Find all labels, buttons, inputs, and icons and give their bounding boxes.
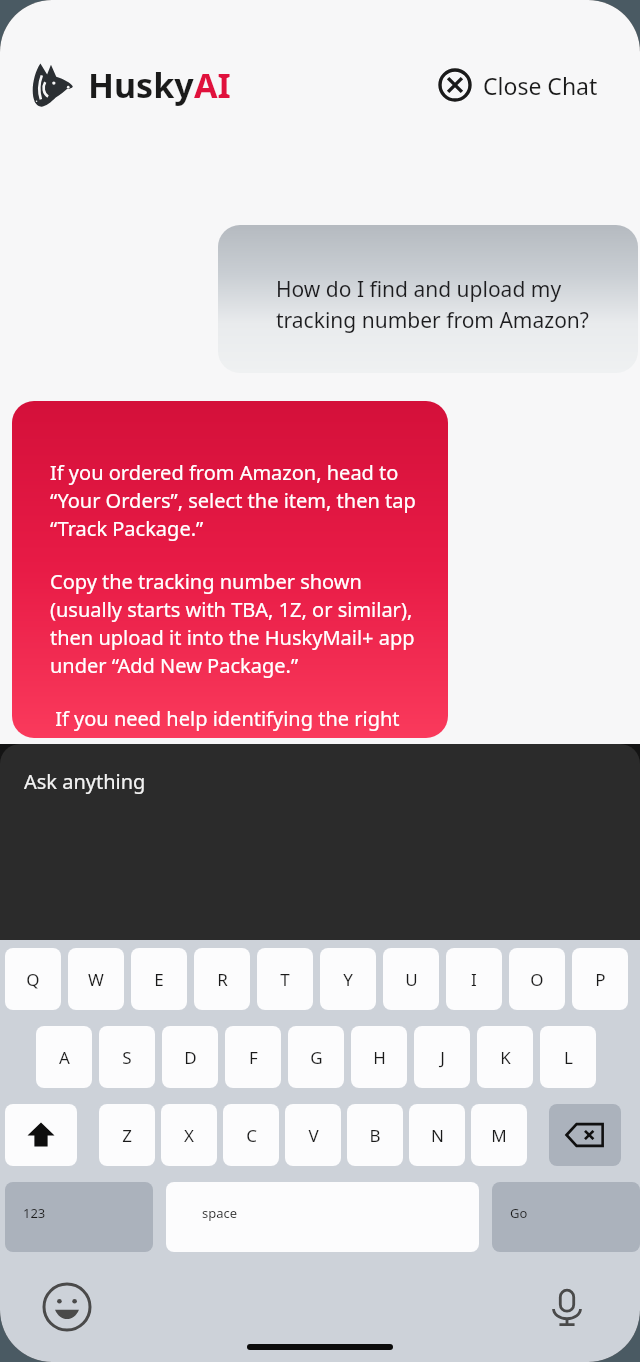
button[interactable]: V — [285, 1104, 341, 1166]
button[interactable]: If you ordered from Amazon, head to “You… — [12, 401, 448, 738]
staticText: Ask anything — [24, 768, 146, 795]
staticText: X — [184, 1124, 194, 1147]
button[interactable]: Close Chat — [438, 68, 598, 102]
button[interactable]: Husky — [26, 61, 231, 109]
button[interactable]: B — [347, 1104, 403, 1166]
staticText: Copy the tracking number shown (usually … — [50, 568, 434, 679]
button[interactable]: G — [288, 1026, 344, 1088]
staticText: D — [184, 1046, 197, 1069]
button[interactable]: Ask anything — [0, 744, 640, 940]
staticText: O — [530, 968, 544, 991]
button[interactable]: F — [225, 1026, 281, 1088]
button[interactable]: I — [446, 948, 502, 1010]
button[interactable]: D — [162, 1026, 218, 1088]
staticText: V — [308, 1124, 319, 1147]
staticText: Go — [510, 1204, 528, 1222]
staticText: C — [246, 1124, 257, 1147]
button[interactable]: Y — [320, 948, 376, 1010]
staticText: space — [202, 1204, 238, 1222]
staticText: How do I find and upload my tracking num… — [276, 275, 608, 334]
staticText: J — [440, 1046, 445, 1069]
button[interactable]: W — [68, 948, 124, 1010]
staticText: N — [431, 1124, 444, 1147]
staticText: H — [373, 1046, 386, 1069]
staticText: G — [310, 1046, 323, 1069]
staticText: 123 — [23, 1204, 46, 1222]
button[interactable]: Backspace — [549, 1104, 621, 1166]
button[interactable]: S — [99, 1026, 155, 1088]
staticText: L — [564, 1046, 573, 1069]
button[interactable]: X — [161, 1104, 217, 1166]
button[interactable]: M — [471, 1104, 527, 1166]
button[interactable]: N — [409, 1104, 465, 1166]
button[interactable]: P — [572, 948, 628, 1010]
staticText: W — [88, 968, 104, 991]
staticText: A — [59, 1046, 70, 1069]
staticText: S — [122, 1046, 132, 1069]
staticText: Q — [26, 968, 40, 991]
staticText: Y — [343, 968, 353, 991]
button[interactable]: C — [223, 1104, 279, 1166]
staticText: If you need help identifying the right n… — [50, 705, 434, 738]
button[interactable]: J — [414, 1026, 470, 1088]
staticText: Z — [122, 1124, 132, 1147]
button[interactable]: O — [509, 948, 565, 1010]
staticText: Close Chat — [483, 70, 598, 101]
staticText: P — [595, 968, 606, 991]
button[interactable]: Go — [492, 1182, 640, 1252]
button[interactable]: Shift — [5, 1104, 77, 1166]
staticText: T — [280, 968, 290, 991]
button[interactable]: L — [540, 1026, 596, 1088]
button[interactable]: U — [383, 948, 439, 1010]
staticText: U — [405, 968, 418, 991]
button[interactable]: Voice input — [540, 1280, 594, 1334]
staticText: B — [369, 1124, 381, 1147]
button[interactable]: E — [131, 948, 187, 1010]
button[interactable]: T — [257, 948, 313, 1010]
staticText: R — [217, 968, 228, 991]
staticText: If you ordered from Amazon, head to “You… — [50, 459, 434, 542]
button[interactable]: Q — [5, 948, 61, 1010]
staticText: Husky — [88, 62, 194, 108]
button[interactable]: R — [194, 948, 250, 1010]
staticText: K — [500, 1046, 511, 1069]
button[interactable]: Z — [99, 1104, 155, 1166]
button[interactable]: H — [351, 1026, 407, 1088]
button[interactable]: Emoji — [40, 1280, 94, 1334]
button[interactable]: 123 — [5, 1182, 153, 1252]
button[interactable]: How do I find and upload my tracking num… — [218, 225, 638, 373]
staticText: M — [491, 1124, 507, 1147]
staticText: AI — [194, 62, 231, 108]
staticText: I — [471, 968, 477, 991]
staticText: F — [249, 1046, 258, 1069]
staticText: E — [154, 968, 164, 991]
button[interactable]: K — [477, 1026, 533, 1088]
button[interactable]: space — [166, 1182, 479, 1252]
button[interactable]: A — [36, 1026, 92, 1088]
